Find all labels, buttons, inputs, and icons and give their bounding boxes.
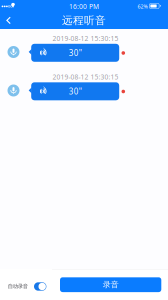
button[interactable]: 录音 <box>60 277 161 292</box>
button[interactable]: Back <box>0 12 20 28</box>
button[interactable]: 自动录音 <box>0 269 52 300</box>
staticText: 2019-08-12 15:30:15 <box>52 73 118 81</box>
staticText: 62% <box>137 3 147 10</box>
staticText: 远程听音 <box>62 14 106 27</box>
staticText: 自动录音 <box>8 283 28 289</box>
staticText: 16:00 PM <box>69 2 99 11</box>
button[interactable]: 2019-08-12 15:30:15 <box>0 36 168 65</box>
staticText: 录音 <box>103 280 119 290</box>
button[interactable]: 2019-08-12 15:30:15 <box>0 75 168 104</box>
staticText: 2019-08-12 15:30:15 <box>52 34 118 43</box>
staticText: 30" <box>69 86 82 97</box>
staticText: 30" <box>69 47 82 58</box>
